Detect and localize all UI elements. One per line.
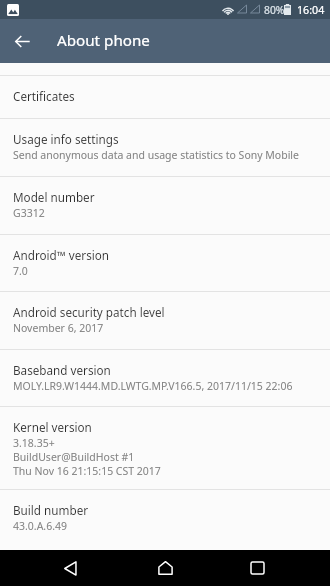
staticText: Baseband version xyxy=(13,362,111,378)
staticText: G3312 xyxy=(13,206,45,220)
button[interactable]: Android security patch level xyxy=(0,292,330,349)
button[interactable]: Model number xyxy=(0,177,330,234)
staticText: Send anonymous data and usage statistics… xyxy=(13,148,299,162)
button[interactable]: Recent apps xyxy=(239,550,275,586)
button[interactable]: Build number xyxy=(0,490,330,547)
staticText: 80% xyxy=(264,3,285,17)
staticText: 3.18.35+ BuildUser@BuildHost #1 Thu Nov … xyxy=(13,436,161,478)
button[interactable]: Home xyxy=(147,550,183,586)
staticText: Android security patch level xyxy=(13,304,165,320)
staticText: Build number xyxy=(13,502,89,518)
staticText: November 6, 2017 xyxy=(13,321,104,335)
staticText: 7.0 xyxy=(13,264,28,278)
button[interactable]: Android™ version xyxy=(0,235,330,291)
staticText: MOLY.LR9.W1444.MD.LWTG.MP.V166.5, 2017/1… xyxy=(13,379,293,393)
button[interactable]: Navigate up xyxy=(0,19,44,63)
staticText: Android™ version xyxy=(13,247,110,263)
button[interactable]: Baseband version xyxy=(0,350,330,406)
staticText: About phone xyxy=(57,30,150,51)
staticText: 16:04 xyxy=(297,3,325,18)
button[interactable]: Kernel version xyxy=(0,407,330,489)
button[interactable]: Usage info settings xyxy=(0,119,330,176)
staticText: Model number xyxy=(13,189,95,205)
button[interactable]: Back xyxy=(52,550,88,586)
button[interactable]: Certificates xyxy=(0,76,330,118)
staticText: Kernel version xyxy=(13,419,92,435)
staticText: Certificates xyxy=(13,88,75,104)
staticText: 43.0.A.6.49 xyxy=(13,519,68,533)
staticText: Usage info settings xyxy=(13,131,119,147)
